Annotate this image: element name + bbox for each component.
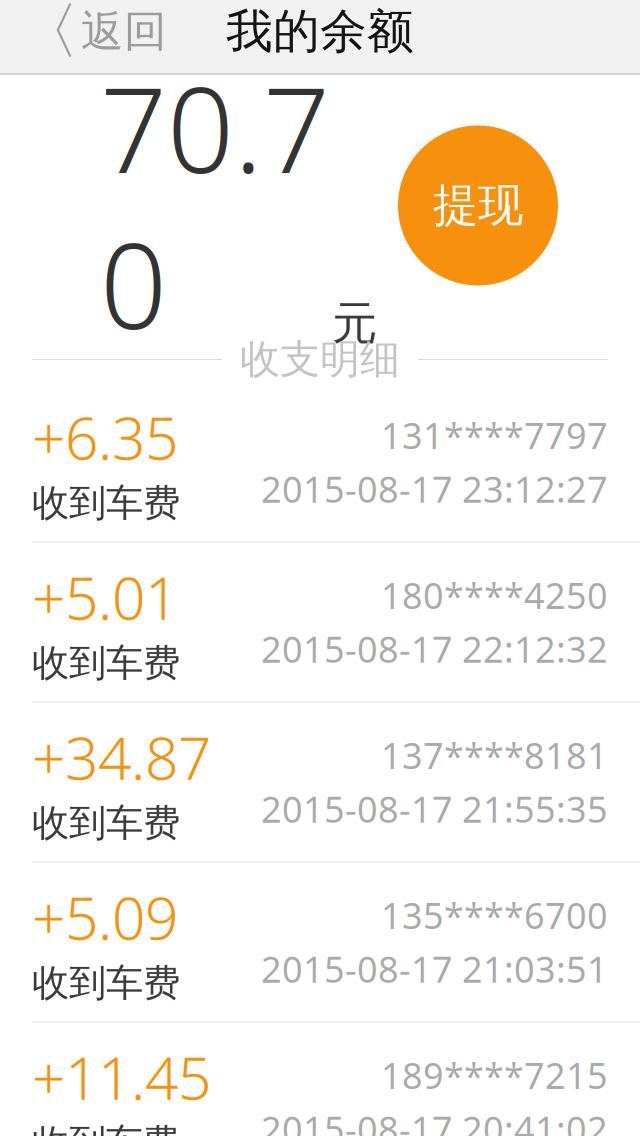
- staticText: 131****7797: [381, 411, 608, 459]
- button[interactable]: 〈: [0, 0, 185, 73]
- staticText: 2015-08-17 23:12:27: [261, 465, 608, 513]
- button[interactable]: +34.87: [0, 702, 640, 862]
- staticText: 元: [332, 296, 377, 351]
- staticText: 〈: [18, 0, 79, 69]
- staticText: 189****7215: [381, 1051, 608, 1099]
- staticText: +34.87: [32, 718, 211, 796]
- button[interactable]: 提现: [398, 125, 558, 285]
- staticText: 收到车费: [32, 640, 180, 686]
- button[interactable]: +5.09: [0, 862, 640, 1022]
- staticText: +5.09: [32, 878, 178, 956]
- staticText: 2015-08-17 22:12:32: [261, 625, 608, 673]
- staticText: +5.01: [32, 558, 178, 636]
- staticText: 70.70: [100, 50, 330, 361]
- staticText: 收到车费: [32, 960, 180, 1006]
- button[interactable]: +6.35: [0, 382, 640, 542]
- staticText: 收到车费: [32, 800, 180, 846]
- staticText: 137****8181: [381, 731, 608, 779]
- staticText: 2015-08-17 21:03:51: [261, 945, 608, 993]
- staticText: 提现: [433, 178, 523, 233]
- staticText: 返回: [81, 5, 167, 58]
- button[interactable]: +5.01: [0, 542, 640, 702]
- staticText: 2015-08-17 20:41:02: [261, 1105, 608, 1136]
- staticText: +11.45: [32, 1038, 211, 1116]
- staticText: +6.35: [32, 398, 178, 476]
- staticText: 2015-08-17 21:55:35: [261, 785, 608, 833]
- button[interactable]: +11.45: [0, 1022, 640, 1136]
- staticText: 135****6700: [381, 891, 608, 939]
- staticText: 收到车费: [32, 480, 180, 526]
- staticText: 收支明细: [240, 335, 400, 384]
- staticText: 收到车费: [32, 1120, 180, 1136]
- staticText: 180****4250: [381, 571, 608, 619]
- staticText: 我的余额: [226, 3, 414, 60]
